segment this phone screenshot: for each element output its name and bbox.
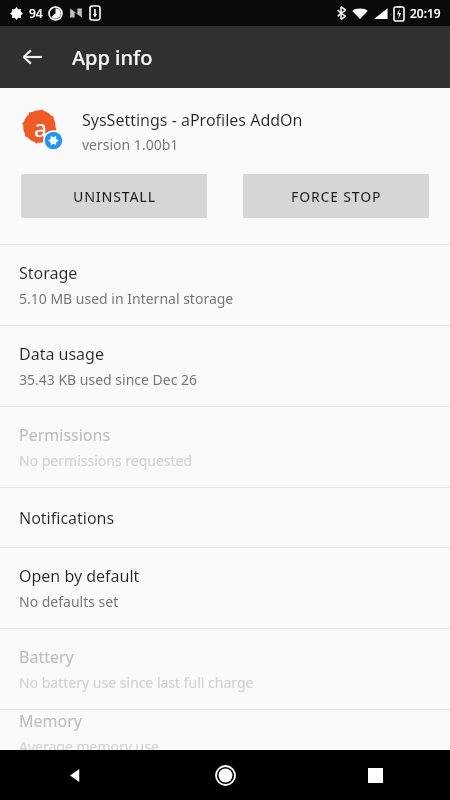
button[interactable]: Data usage — [0, 326, 450, 406]
staticText: Storage — [19, 262, 78, 284]
button[interactable]: Navigate up — [8, 33, 56, 81]
button[interactable]: Open by default — [0, 548, 450, 628]
button[interactable]: Notifications — [0, 488, 450, 547]
staticText: 35.43 KB used since Dec 26 — [19, 370, 198, 389]
button[interactable]: Battery — [0, 629, 450, 709]
staticText: 20:19 — [410, 5, 441, 21]
staticText: Notifications — [19, 507, 115, 529]
staticText: a — [34, 112, 47, 143]
staticText: UNINSTALL — [73, 187, 156, 206]
button[interactable]: Permissions — [0, 407, 450, 487]
staticText: No permissions requested — [19, 451, 193, 470]
staticText: Average memory use — [19, 737, 159, 750]
staticText: version 1.00b1 — [82, 135, 179, 154]
staticText: 94 — [29, 5, 43, 21]
staticText: Open by default — [19, 565, 140, 587]
staticText: 5.10 MB used in Internal storage — [19, 289, 234, 308]
staticText: Data usage — [19, 343, 104, 365]
button[interactable]: FORCE STOP — [243, 174, 429, 218]
staticText: Memory — [19, 710, 82, 732]
button[interactable]: Recent apps — [300, 750, 450, 800]
staticText: FORCE STOP — [291, 187, 382, 206]
button[interactable]: UNINSTALL — [21, 174, 207, 218]
staticText: App info — [72, 44, 153, 71]
button[interactable]: Memory — [0, 710, 450, 750]
button[interactable]: Storage — [0, 245, 450, 325]
staticText: Battery — [19, 646, 74, 668]
staticText: Permissions — [19, 424, 111, 446]
button[interactable]: Home — [150, 750, 300, 800]
staticText: No battery use since last full charge — [19, 673, 254, 692]
button[interactable]: Back — [0, 750, 150, 800]
staticText: SysSettings - aProfiles AddOn — [82, 109, 303, 131]
staticText: No defaults set — [19, 592, 119, 611]
